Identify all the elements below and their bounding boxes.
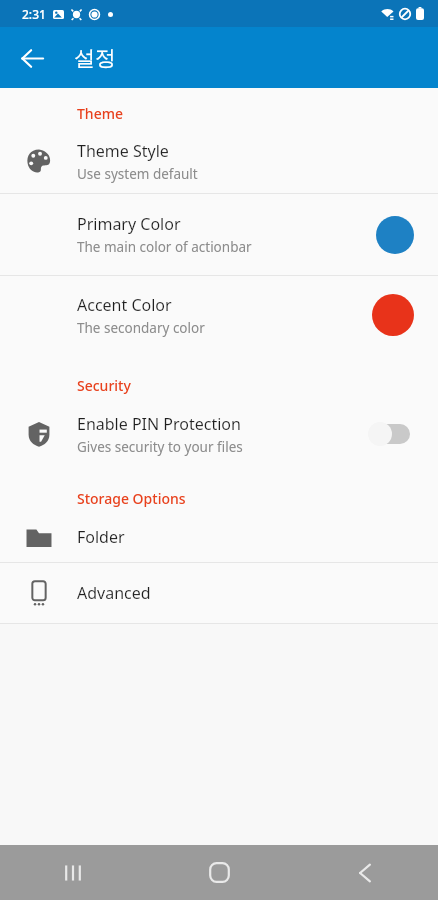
button[interactable]: Accent Color <box>0 276 438 354</box>
button[interactable]: Back <box>292 845 438 900</box>
button[interactable]: Theme Style <box>0 129 438 193</box>
staticText: The main color of actionbar <box>77 238 252 256</box>
button[interactable]: Enable PIN Protection <box>0 401 438 467</box>
button[interactable]: Primary Color <box>0 194 438 275</box>
staticText: 2:31 <box>22 6 46 22</box>
staticText: Folder <box>77 526 125 548</box>
staticText: Accent Color <box>77 294 172 316</box>
button[interactable]: Back <box>10 36 54 80</box>
staticText: Primary Color <box>77 213 181 235</box>
staticText: Storage Options <box>77 489 186 508</box>
staticText: Theme Style <box>77 140 169 162</box>
button[interactable]: Folder <box>0 512 438 562</box>
staticText: The secondary color <box>77 319 205 337</box>
button[interactable]: Pick color <box>372 294 414 336</box>
staticText: Security <box>77 376 131 395</box>
staticText: Enable PIN Protection <box>77 413 241 435</box>
button[interactable]: Advanced <box>0 563 438 623</box>
staticText: 설정 <box>74 45 116 71</box>
staticText: Gives security to your files <box>77 438 243 456</box>
staticText: Advanced <box>77 582 151 604</box>
staticText: Use system default <box>77 165 198 183</box>
button[interactable]: Home <box>146 845 292 900</box>
button[interactable]: Toggle PIN protection <box>368 421 414 447</box>
button[interactable]: Pick color <box>376 216 414 254</box>
button[interactable]: Recents <box>0 845 146 900</box>
staticText: Theme <box>77 104 123 123</box>
